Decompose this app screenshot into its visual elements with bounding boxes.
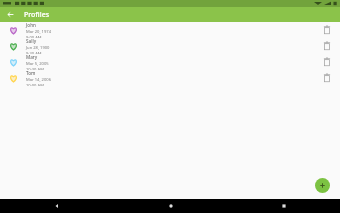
staticText: Mar 20, 1974	[26, 29, 51, 35]
button[interactable]: Tom	[0, 70, 340, 86]
staticText: John	[26, 22, 36, 28]
staticText: Jun 28, 1900	[26, 45, 50, 51]
staticText: Sally	[26, 38, 37, 44]
staticText: 10:30 AM	[26, 67, 44, 70]
button[interactable]: Delete Sally	[314, 38, 340, 54]
button[interactable]: Recent apps	[227, 199, 340, 213]
button[interactable]: Delete John	[314, 22, 340, 38]
staticText: 9:00 AM	[26, 35, 42, 38]
button[interactable]: Mary	[0, 54, 340, 70]
staticText: Mary	[26, 54, 38, 60]
staticText: 9:30 AM	[26, 51, 42, 54]
button[interactable]: Back	[0, 199, 114, 213]
button[interactable]: Back	[4, 8, 17, 21]
staticText: Mar 5, 2005	[26, 61, 49, 67]
button[interactable]: Delete Mary	[314, 54, 340, 70]
staticText: Tom	[26, 70, 36, 76]
staticText: 10:00 AM	[26, 83, 44, 86]
button[interactable]: Add profile	[315, 178, 330, 193]
button[interactable]: John	[0, 22, 340, 38]
staticText: Mar 14, 2006	[26, 77, 51, 83]
staticText: Profiles	[24, 10, 50, 20]
button[interactable]: Home	[114, 199, 227, 213]
button[interactable]: Sally	[0, 38, 340, 54]
button[interactable]: Delete Tom	[314, 70, 340, 86]
